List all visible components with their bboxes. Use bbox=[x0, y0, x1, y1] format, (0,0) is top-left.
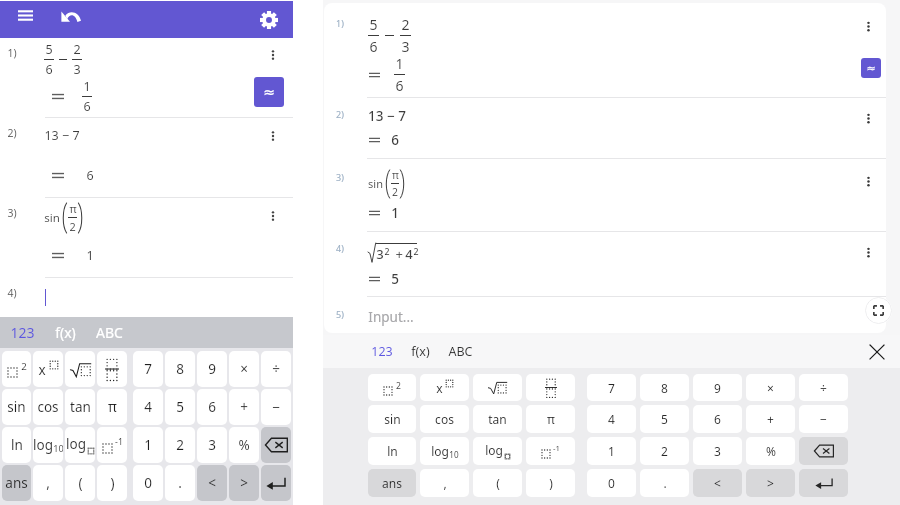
button[interactable]: 6 bbox=[693, 405, 742, 433]
button[interactable]: > bbox=[229, 465, 259, 501]
button[interactable]: 7 bbox=[133, 351, 163, 387]
button[interactable]: More options bbox=[858, 171, 878, 191]
button[interactable]: 1) bbox=[0, 38, 293, 117]
button[interactable]: . bbox=[165, 465, 195, 501]
button[interactable]: 5) bbox=[324, 297, 886, 333]
button[interactable]: 2 bbox=[368, 374, 416, 401]
button[interactable]: < bbox=[197, 465, 227, 501]
button[interactable]: More options bbox=[858, 108, 878, 128]
button[interactable]: 2) bbox=[324, 98, 886, 158]
button[interactable]: 2 bbox=[640, 437, 689, 465]
button[interactable] bbox=[473, 374, 522, 401]
button[interactable]: cos bbox=[420, 405, 469, 433]
button[interactable]: ) bbox=[97, 465, 127, 501]
button[interactable]: − bbox=[799, 405, 848, 433]
button[interactable]: ln bbox=[368, 437, 416, 465]
button[interactable] bbox=[97, 351, 127, 387]
button[interactable]: Undo bbox=[56, 1, 85, 30]
button[interactable] bbox=[526, 374, 575, 401]
button[interactable]: 8 bbox=[640, 374, 689, 401]
button[interactable]: % bbox=[229, 427, 259, 463]
button[interactable] bbox=[65, 351, 95, 387]
button[interactable]: 1 bbox=[133, 427, 163, 463]
button[interactable]: x bbox=[420, 374, 469, 401]
button[interactable]: 3 bbox=[693, 437, 742, 465]
button[interactable]: 123 bbox=[4, 318, 41, 347]
button[interactable]: Approximate bbox=[861, 58, 881, 78]
button[interactable]: 4) bbox=[324, 232, 886, 296]
button[interactable]: 9 bbox=[197, 351, 227, 387]
button[interactable]: × bbox=[229, 351, 259, 387]
button[interactable]: More options bbox=[858, 16, 878, 36]
button[interactable]: 3) bbox=[324, 159, 886, 231]
button[interactable]: , bbox=[33, 465, 63, 501]
button[interactable]: 1 bbox=[587, 437, 636, 465]
button[interactable]: Menu bbox=[11, 1, 40, 30]
button[interactable]: π bbox=[526, 405, 575, 433]
button[interactable]: tan bbox=[473, 405, 522, 433]
button[interactable] bbox=[799, 437, 848, 465]
button[interactable]: 1) bbox=[324, 3, 886, 97]
button[interactable]: ( bbox=[473, 469, 522, 497]
button[interactable]: . bbox=[640, 469, 689, 497]
button[interactable]: log bbox=[65, 427, 95, 463]
button[interactable]: ABC bbox=[90, 318, 129, 347]
button[interactable]: 2 bbox=[165, 427, 195, 463]
button[interactable] bbox=[261, 465, 291, 501]
button[interactable]: × bbox=[746, 374, 795, 401]
button[interactable]: 4) bbox=[0, 278, 293, 317]
button[interactable]: 0 bbox=[133, 465, 163, 501]
button[interactable]: + bbox=[229, 389, 259, 425]
button[interactable]: 7 bbox=[587, 374, 636, 401]
button[interactable]: x bbox=[33, 351, 63, 387]
button[interactable]: + bbox=[746, 405, 795, 433]
button[interactable]: cos bbox=[33, 389, 63, 425]
button[interactable]: 123 bbox=[364, 338, 400, 365]
button[interactable]: -1 bbox=[97, 427, 127, 463]
button[interactable]: > bbox=[746, 469, 795, 497]
button[interactable]: log bbox=[33, 427, 63, 463]
button[interactable]: Approximate bbox=[254, 77, 284, 107]
button[interactable]: log bbox=[420, 437, 469, 465]
button[interactable]: More options bbox=[263, 206, 283, 226]
button[interactable]: ( bbox=[65, 465, 95, 501]
button[interactable]: ABC bbox=[441, 338, 480, 365]
button[interactable]: Settings bbox=[254, 5, 283, 34]
button[interactable]: log bbox=[473, 437, 522, 465]
button[interactable]: < bbox=[693, 469, 742, 497]
button[interactable]: 3 bbox=[197, 427, 227, 463]
button[interactable]: 8 bbox=[165, 351, 195, 387]
button[interactable]: π bbox=[97, 389, 127, 425]
button[interactable]: sin bbox=[368, 405, 416, 433]
button[interactable]: , bbox=[420, 469, 469, 497]
button[interactable]: f(x) bbox=[404, 338, 437, 365]
button[interactable]: More options bbox=[858, 242, 878, 262]
button[interactable]: 2) bbox=[0, 118, 293, 197]
button[interactable]: f(x) bbox=[49, 318, 82, 347]
button[interactable]: tan bbox=[65, 389, 95, 425]
button[interactable]: 2 bbox=[2, 351, 31, 387]
button[interactable]: 3) bbox=[0, 198, 293, 277]
button[interactable] bbox=[261, 427, 291, 463]
button[interactable]: 5 bbox=[640, 405, 689, 433]
button[interactable]: 4 bbox=[587, 405, 636, 433]
button[interactable]: 9 bbox=[693, 374, 742, 401]
button[interactable]: % bbox=[746, 437, 795, 465]
button[interactable] bbox=[799, 469, 848, 497]
button[interactable]: ) bbox=[526, 469, 575, 497]
button[interactable]: 0 bbox=[587, 469, 636, 497]
button[interactable]: ÷ bbox=[799, 374, 848, 401]
button[interactable]: sin bbox=[2, 389, 31, 425]
button[interactable]: More options bbox=[263, 45, 283, 65]
button[interactable]: Close keyboard bbox=[862, 337, 892, 367]
button[interactable]: Fullscreen bbox=[865, 297, 892, 324]
button[interactable]: ln bbox=[2, 427, 31, 463]
button[interactable]: 6 bbox=[197, 389, 227, 425]
button[interactable]: ÷ bbox=[261, 351, 291, 387]
button[interactable]: ans bbox=[2, 465, 31, 501]
button[interactable]: More options bbox=[263, 126, 283, 146]
button[interactable]: − bbox=[261, 389, 291, 425]
button[interactable]: 4 bbox=[133, 389, 163, 425]
button[interactable]: -1 bbox=[526, 437, 575, 465]
button[interactable]: 5 bbox=[165, 389, 195, 425]
